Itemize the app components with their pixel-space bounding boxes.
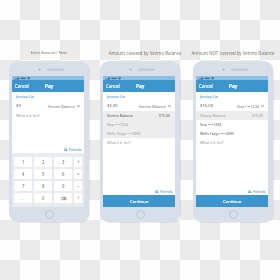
staticText: Pay xyxy=(136,83,145,89)
button[interactable]: 7 xyxy=(14,181,32,191)
staticText: Friends xyxy=(253,189,266,194)
button[interactable]: ÷ xyxy=(74,193,82,203)
staticText: 7 xyxy=(22,183,25,189)
button[interactable]: Cancel xyxy=(15,83,29,89)
staticText: . xyxy=(22,195,24,201)
button[interactable]: Wells Fargo ••••2895 xyxy=(200,129,264,138)
button[interactable]: Pay xyxy=(136,83,145,89)
button[interactable]: Friends xyxy=(64,147,82,152)
staticText: What's it for? xyxy=(16,113,40,118)
staticText: Venmo Balance xyxy=(107,113,134,118)
staticText: What's it for? xyxy=(107,140,131,145)
button[interactable]: 9 xyxy=(54,181,72,191)
staticText: 4 xyxy=(22,171,25,177)
button[interactable]: Cancel xyxy=(199,83,213,89)
staticText: Jessica Lin xyxy=(16,94,35,99)
staticText: Cancel xyxy=(106,83,120,89)
staticText: Venmo Balance xyxy=(48,104,75,109)
button[interactable]: Pay xyxy=(45,83,54,89)
button[interactable]: Continue xyxy=(196,195,268,207)
button[interactable]: Wells Fargo ••••2895 xyxy=(107,129,171,138)
staticText: $16.00 xyxy=(200,103,214,109)
staticText: Wells Fargo ••••2895 xyxy=(200,131,234,136)
staticText: Pay xyxy=(45,83,54,89)
staticText: Visa ••••1234 xyxy=(200,122,222,127)
staticText: Visa ••••1234 xyxy=(107,122,129,127)
staticText: 8 xyxy=(42,183,45,189)
button[interactable]: 1 xyxy=(14,157,32,167)
staticText: 3 xyxy=(62,159,65,165)
staticText: Jessica Lin xyxy=(107,94,126,99)
button[interactable]: Venmo Balance xyxy=(107,111,171,120)
button[interactable]: − xyxy=(74,181,82,191)
button[interactable]: 0 xyxy=(34,193,52,203)
button[interactable]: 4 xyxy=(14,169,32,179)
button[interactable]: Continue xyxy=(103,195,175,207)
button[interactable]: $0 xyxy=(16,101,80,111)
staticText: Enter Amount / Note xyxy=(4,50,94,55)
staticText: $0 xyxy=(16,103,21,109)
button[interactable]: $5.00 xyxy=(107,101,171,111)
staticText: Cancel xyxy=(199,83,213,89)
staticText: Wells Fargo ••••2895 xyxy=(107,131,141,136)
staticText: × xyxy=(77,171,80,177)
staticText: Amount covered by Venmo Balance xyxy=(100,50,190,56)
staticText: Cancel xyxy=(15,83,29,89)
button[interactable]: 5 xyxy=(34,169,52,179)
staticText: 6 xyxy=(62,171,65,177)
staticText: + xyxy=(77,159,80,165)
staticText: 5 xyxy=(42,171,45,177)
staticText: 9 xyxy=(62,183,65,189)
button[interactable]: $16.00 xyxy=(200,101,264,111)
staticText: Jessica Lin xyxy=(200,94,219,99)
staticText: Venmo Balance xyxy=(200,113,226,118)
staticText: $15.00 xyxy=(159,113,171,118)
staticText: Friends xyxy=(69,147,82,152)
button[interactable]: Visa ••••1234 xyxy=(107,120,171,129)
staticText: Continue xyxy=(130,198,149,204)
staticText: Pay xyxy=(229,83,238,89)
staticText: 1 xyxy=(22,159,25,165)
staticText: − xyxy=(77,183,80,189)
staticText: Continue xyxy=(223,198,242,204)
staticText: $15.00 xyxy=(252,113,264,118)
button[interactable]: Venmo Balance xyxy=(200,111,264,120)
button[interactable]: Cancel xyxy=(106,83,120,89)
button[interactable]: 3 xyxy=(54,157,72,167)
staticText: Visa ••••1234 xyxy=(237,104,259,109)
staticText: 2 xyxy=(42,159,45,165)
button[interactable]: . xyxy=(14,193,32,203)
staticText: $5.00 xyxy=(107,103,118,109)
button[interactable]: + xyxy=(74,157,82,167)
button[interactable]: 2 xyxy=(34,157,52,167)
staticText: What's it for? xyxy=(200,140,224,145)
button[interactable]: Visa ••••1234 xyxy=(200,120,264,129)
button[interactable]: Delete xyxy=(54,193,72,203)
staticText: ÷ xyxy=(77,195,80,201)
button[interactable]: 6 xyxy=(54,169,72,179)
button[interactable]: × xyxy=(74,169,82,179)
staticText: Friends xyxy=(160,189,173,194)
staticText: Venmo Balance xyxy=(139,104,166,109)
button[interactable]: Friends xyxy=(248,189,266,194)
button[interactable]: 8 xyxy=(34,181,52,191)
button[interactable]: Pay xyxy=(229,83,238,89)
staticText: Amount NOT covered by Venmo Balance xyxy=(187,50,279,56)
button[interactable]: Friends xyxy=(155,189,173,194)
staticText: 0 xyxy=(42,195,45,201)
